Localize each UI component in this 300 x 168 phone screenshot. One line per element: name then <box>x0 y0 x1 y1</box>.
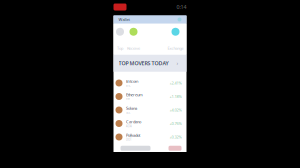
staticText: ETH <box>126 97 130 101</box>
staticText: Exchange <box>167 45 183 51</box>
staticText: Cardano <box>126 119 141 124</box>
staticText: Receive <box>127 45 140 51</box>
button[interactable]: Ethereum <box>113 90 186 103</box>
staticText: +0.32% <box>169 134 181 140</box>
button[interactable]: Bitcoin <box>113 76 186 90</box>
staticText: SOL <box>126 111 130 114</box>
button[interactable]: Top <box>114 24 125 55</box>
staticText: +1.18% <box>169 94 181 99</box>
staticText: › <box>176 60 178 67</box>
staticText: Solana <box>126 106 137 111</box>
button[interactable]: Polkadot <box>113 130 186 144</box>
staticText: TOP MOVERS TODAY <box>118 60 168 67</box>
button[interactable]: Cardano <box>113 117 186 130</box>
staticText: BTC <box>126 84 131 87</box>
button[interactable]: Receive <box>125 24 141 55</box>
staticText: Polkadot <box>126 133 140 138</box>
staticText: Wallet <box>118 17 129 22</box>
staticText: Bitcoin <box>126 79 138 84</box>
staticText: +4.02% <box>169 107 181 113</box>
staticText: Ethereum <box>126 92 143 97</box>
staticText: +0.76% <box>169 121 181 126</box>
staticText: ADA <box>126 124 132 128</box>
staticText: +2.41% <box>169 80 181 86</box>
button[interactable]: Solana <box>113 103 186 117</box>
staticText: Top <box>117 45 123 51</box>
staticText: DOT <box>126 138 131 141</box>
button[interactable]: Exchange <box>166 24 184 55</box>
staticText: 0:14 <box>176 3 186 11</box>
